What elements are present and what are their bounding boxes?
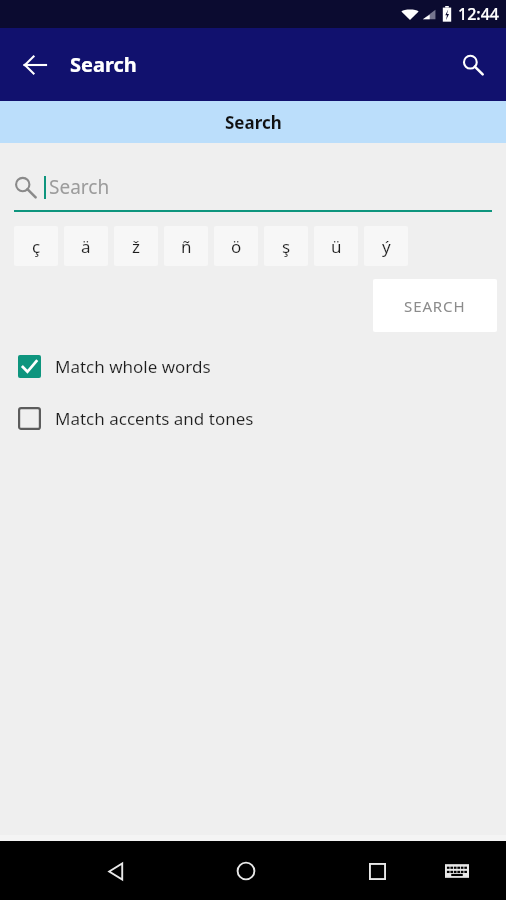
button[interactable]: ž [114,226,158,266]
staticText: SEARCH [404,296,466,316]
staticText: Search [49,174,110,200]
button[interactable]: ñ [164,226,208,266]
staticText: ä [81,235,91,258]
button[interactable]: ç [14,226,58,266]
button[interactable]: Search [0,101,506,143]
staticText: Search [225,111,282,134]
staticText: Match accents and tones [55,407,254,430]
button[interactable]: Back [11,41,59,89]
button[interactable]: Match accents and tones [0,401,506,435]
staticText: ž [132,235,140,258]
staticText: ý [382,235,391,258]
button[interactable]: ü [314,226,358,266]
staticText: ç [32,235,41,258]
button[interactable]: ö [214,226,258,266]
staticText: ş [282,235,291,258]
button[interactable]: Match whole words [0,349,506,383]
button[interactable]: Home [218,843,274,899]
staticText: ü [331,235,342,258]
button[interactable]: ä [64,226,108,266]
button[interactable]: Search [449,41,497,89]
button[interactable]: ş [264,226,308,266]
button[interactable]: Back [87,843,143,899]
staticText: Match whole words [55,355,211,378]
staticText: Search [70,51,137,78]
staticText: ñ [181,235,192,258]
button[interactable]: Recent apps [349,843,405,899]
staticText: 12:44 [458,3,499,25]
button[interactable]: Keyboard [431,845,483,897]
staticText: ö [231,235,242,258]
button[interactable]: ý [364,226,408,266]
button[interactable]: SEARCH [373,279,497,332]
